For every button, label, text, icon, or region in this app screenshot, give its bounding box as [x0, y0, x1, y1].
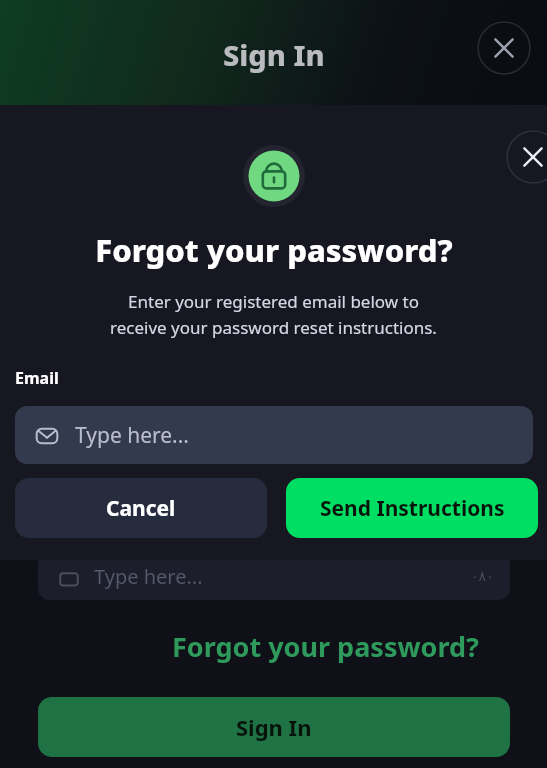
button[interactable]: Type here...: [15, 406, 533, 464]
button[interactable]: Close dialog: [506, 130, 547, 184]
button[interactable]: Cancel: [15, 478, 267, 538]
staticText: Forgot your password?: [95, 229, 453, 271]
staticText: ۰۸۰: [471, 568, 494, 584]
staticText: Sign In: [236, 712, 312, 742]
staticText: Type here...: [75, 421, 189, 450]
staticText: Cancel: [106, 494, 176, 523]
staticText: Email: [15, 367, 59, 389]
button: Forgot your password?: [0, 105, 547, 560]
button[interactable]: Type here...: [38, 552, 510, 600]
button[interactable]: Close: [477, 21, 531, 75]
button[interactable]: Sign In: [38, 697, 510, 757]
staticText: Enter your registered email below to rec…: [40, 290, 507, 339]
staticText: Sign In: [223, 35, 325, 74]
staticText: Type here...: [94, 563, 203, 590]
button[interactable]: Send Instructions: [286, 478, 538, 538]
button[interactable]: Forgot your password?: [172, 628, 479, 665]
staticText: Send Instructions: [320, 494, 505, 523]
